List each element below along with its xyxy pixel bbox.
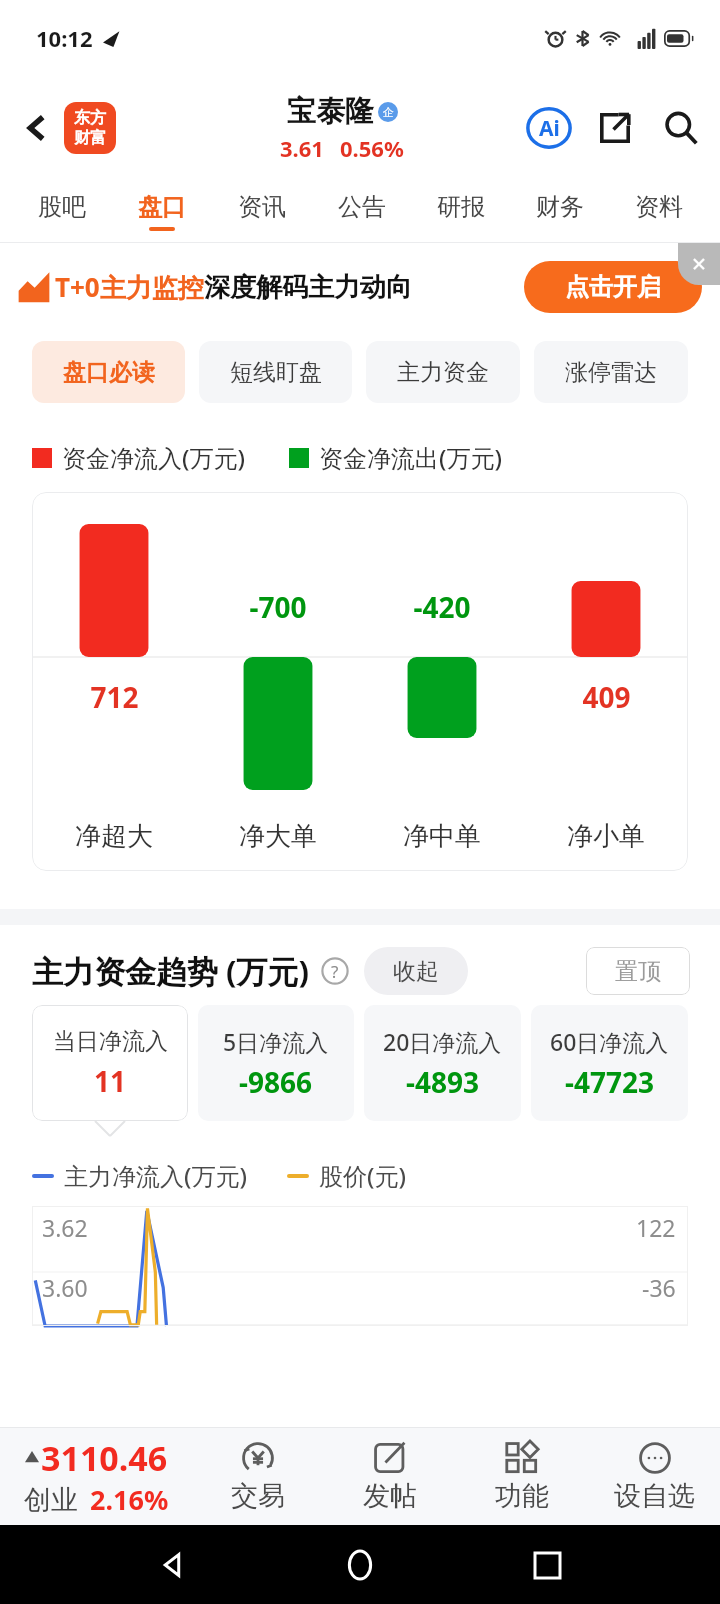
staticText: 置顶 bbox=[615, 957, 661, 986]
button[interactable]: East Money home bbox=[64, 102, 116, 154]
button[interactable]: Home bbox=[337, 1542, 383, 1588]
staticText: 交易 bbox=[231, 1479, 285, 1513]
button[interactable]: Share bbox=[590, 103, 640, 153]
staticText: 主力资金 bbox=[397, 358, 489, 387]
staticText: 研报 bbox=[437, 192, 485, 222]
staticText: Ai bbox=[539, 114, 560, 143]
button[interactable]: Help bbox=[320, 956, 350, 986]
staticText: 3.62 bbox=[42, 1212, 88, 1243]
staticText: -9866 bbox=[239, 1063, 313, 1101]
staticText: 企 bbox=[383, 105, 394, 119]
button[interactable]: 20日净流入 bbox=[364, 1005, 521, 1121]
button[interactable]: 发帖 bbox=[324, 1427, 456, 1525]
button[interactable]: 涨停雷达 bbox=[534, 341, 688, 403]
button[interactable]: 3110.46 bbox=[0, 1427, 192, 1525]
staticText: 净中单 bbox=[403, 820, 481, 853]
button[interactable]: 资讯 bbox=[212, 180, 312, 242]
staticText: 主力净流入(万元) bbox=[64, 1159, 247, 1192]
button[interactable]: 置顶 bbox=[586, 947, 690, 995]
staticText: -420 bbox=[413, 588, 471, 626]
staticText: 主力资金趋势 (万元) bbox=[32, 950, 310, 992]
staticText: 发帖 bbox=[363, 1479, 417, 1513]
staticText: 净大单 bbox=[239, 820, 317, 853]
button[interactable]: 设自选 bbox=[588, 1427, 720, 1525]
button[interactable]: 收起 bbox=[364, 947, 468, 995]
staticText: 涨停雷达 bbox=[565, 358, 657, 387]
staticText: 11 bbox=[94, 1062, 127, 1100]
staticText: ? bbox=[331, 960, 339, 983]
button[interactable]: 短线盯盘 bbox=[199, 341, 352, 403]
button[interactable]: 当日净流入 bbox=[32, 1005, 188, 1121]
staticText: 财务 bbox=[536, 192, 584, 222]
button[interactable]: 5日净流入 bbox=[198, 1005, 354, 1121]
staticText: 东方 bbox=[74, 108, 106, 128]
button[interactable]: 712 bbox=[32, 492, 196, 871]
staticText: 短线盯盘 bbox=[230, 358, 322, 387]
button[interactable]: 盘口 bbox=[112, 180, 212, 242]
staticText: -47723 bbox=[565, 1063, 655, 1101]
staticText: 409 bbox=[582, 678, 631, 716]
button[interactable]: 资料 bbox=[609, 180, 708, 242]
button[interactable]: Search bbox=[656, 103, 706, 153]
staticText: 创业 bbox=[24, 1483, 78, 1517]
button[interactable]: 功能 bbox=[456, 1427, 588, 1525]
button[interactable]: 股吧 bbox=[12, 180, 112, 242]
staticText: ✕ bbox=[691, 253, 707, 275]
staticText: 2.16% bbox=[90, 1481, 169, 1518]
staticText: T+0主力监控 bbox=[55, 269, 204, 305]
button[interactable]: 交易 bbox=[192, 1427, 324, 1525]
staticText: 资讯 bbox=[238, 192, 286, 222]
staticText: 20日净流入 bbox=[383, 1026, 502, 1057]
staticText: 资金净流入(万元) bbox=[62, 441, 245, 474]
staticText: 功能 bbox=[495, 1479, 549, 1513]
button[interactable]: 409 bbox=[524, 492, 688, 871]
staticText: 712 bbox=[90, 678, 139, 716]
button[interactable]: 财务 bbox=[510, 180, 609, 242]
button[interactable]: Recents bbox=[524, 1542, 570, 1588]
button[interactable]: 主力资金 bbox=[366, 341, 520, 403]
staticText: 公告 bbox=[338, 192, 386, 222]
button[interactable]: 公告 bbox=[312, 180, 411, 242]
staticText: 3.60 bbox=[42, 1272, 88, 1303]
button[interactable]: Back bbox=[10, 101, 64, 155]
staticText: 设自选 bbox=[614, 1479, 695, 1513]
button[interactable]: AI assistant bbox=[524, 103, 574, 153]
button[interactable]: -420 bbox=[360, 492, 524, 871]
staticText: 盘口 bbox=[138, 192, 186, 222]
button[interactable]: 盘口必读 bbox=[32, 341, 185, 403]
staticText: 净小单 bbox=[567, 820, 645, 853]
button[interactable]: -700 bbox=[196, 492, 360, 871]
button[interactable]: 研报 bbox=[411, 180, 510, 242]
staticText: 点击开启 bbox=[565, 272, 661, 302]
staticText: 当日净流入 bbox=[53, 1027, 168, 1056]
button[interactable]: Back bbox=[150, 1542, 196, 1588]
staticText: 盘口必读 bbox=[63, 358, 155, 387]
staticText: 122 bbox=[636, 1212, 676, 1243]
staticText: 资料 bbox=[635, 192, 683, 222]
staticText: -4893 bbox=[406, 1063, 480, 1101]
staticText: 宝泰隆 bbox=[287, 93, 374, 130]
staticText: 股吧 bbox=[38, 192, 86, 222]
staticText: 60日净流入 bbox=[550, 1026, 669, 1057]
staticText: 5日净流入 bbox=[223, 1026, 329, 1057]
staticText: 财富 bbox=[74, 128, 106, 148]
staticText: 深度解码主力动向 bbox=[204, 271, 412, 304]
staticText: 净超大 bbox=[75, 820, 153, 853]
button[interactable]: 点击开启 bbox=[524, 261, 702, 313]
staticText: -700 bbox=[249, 588, 307, 626]
staticText: 股价(元) bbox=[319, 1159, 406, 1192]
staticText: 3110.46 bbox=[41, 1435, 168, 1481]
button[interactable]: 60日净流入 bbox=[531, 1005, 688, 1121]
staticText: 收起 bbox=[393, 957, 439, 986]
staticText: 10:12 bbox=[36, 23, 93, 53]
button[interactable]: Close ad bbox=[678, 243, 720, 285]
staticText: 3.61 bbox=[280, 133, 324, 163]
staticText: -36 bbox=[642, 1272, 676, 1303]
staticText: 0.56% bbox=[340, 133, 404, 163]
staticText: 资金净流出(万元) bbox=[319, 441, 502, 474]
